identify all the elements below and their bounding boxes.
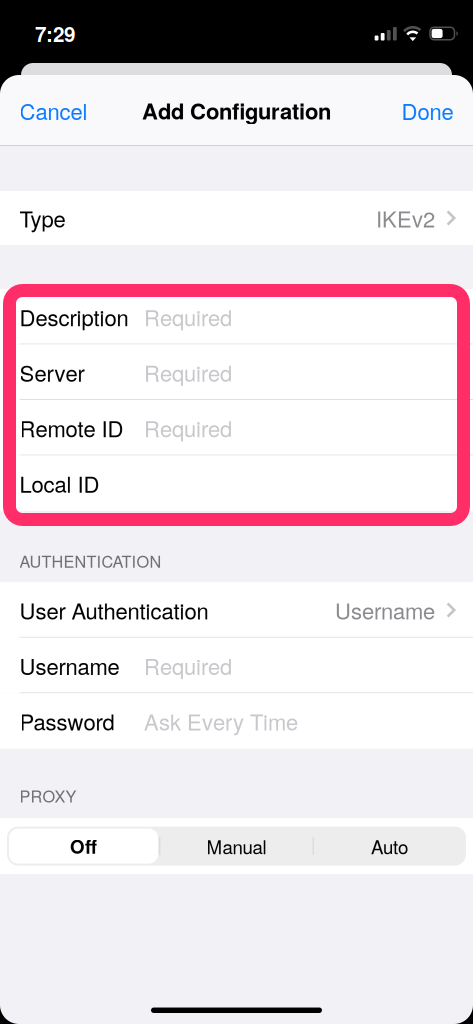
staticText: Required [144, 412, 232, 443]
staticText: PROXY [19, 784, 76, 807]
staticText: AUTHENTICATION [19, 549, 161, 572]
staticText: User Authentication [19, 594, 208, 626]
button[interactable]: Username [0, 638, 473, 693]
staticText: Required [144, 356, 232, 388]
button[interactable]: Done [389, 85, 473, 136]
button[interactable]: Password [0, 693, 473, 749]
staticText: Type [19, 202, 65, 234]
staticText: Cancel [19, 95, 87, 126]
staticText: Ask Every Time [144, 705, 298, 737]
button[interactable]: Manual [160, 827, 313, 866]
button[interactable]: Description [0, 289, 473, 344]
button[interactable]: Auto [313, 827, 466, 866]
staticText: Manual [206, 833, 266, 859]
staticText: Server [19, 356, 84, 388]
button[interactable]: Type [0, 191, 473, 245]
button[interactable]: Remote ID [0, 400, 473, 455]
staticText: Off [70, 833, 97, 859]
button[interactable]: Local ID [0, 455, 473, 511]
staticText: IKEv2 [376, 202, 435, 234]
button[interactable]: Cancel [0, 85, 99, 136]
button[interactable]: Server [0, 344, 473, 400]
staticText: Username [335, 594, 435, 626]
button[interactable]: Off [7, 827, 160, 866]
staticText: Username [19, 650, 119, 681]
staticText: Remote ID [19, 412, 123, 443]
staticText: Description [19, 301, 128, 332]
staticText: Auto [371, 833, 408, 859]
staticText: Required [144, 650, 232, 681]
button[interactable]: User Authentication [0, 582, 473, 638]
staticText: Done [401, 95, 453, 126]
staticText: Password [19, 705, 114, 737]
staticText: Local ID [19, 467, 99, 499]
staticText: Add Configuration [142, 95, 331, 126]
staticText: Required [144, 301, 232, 332]
staticText: 7:29 [35, 19, 75, 48]
